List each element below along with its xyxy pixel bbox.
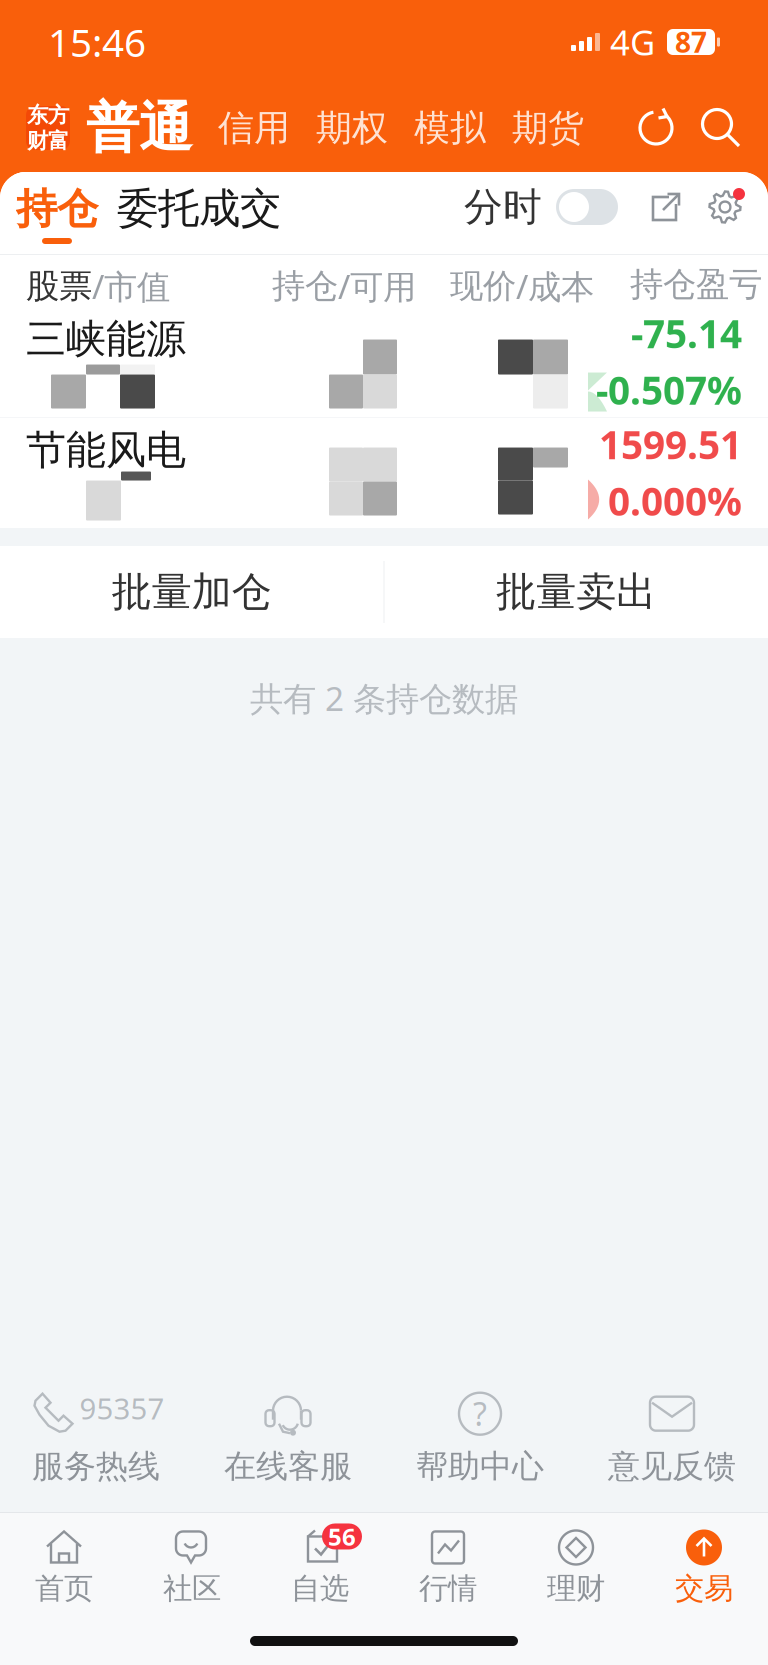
staticText: 理财: [547, 1570, 605, 1606]
staticText: 15:46: [48, 16, 146, 68]
staticText: 委托成交: [117, 183, 281, 234]
staticText: -75.14: [631, 307, 742, 359]
button[interactable]: 三峡能源: [0, 307, 768, 417]
staticText: 意见反馈: [608, 1447, 736, 1486]
button[interactable]: 设置: [708, 190, 742, 224]
staticText: 自选: [291, 1570, 349, 1606]
button[interactable]: 刷新: [636, 107, 678, 149]
button[interactable]: ?: [384, 1387, 576, 1486]
staticText: ?: [473, 1392, 487, 1435]
button[interactable]: 95357: [0, 1387, 192, 1486]
staticText: /市值: [92, 264, 170, 308]
button[interactable]: 委托成交: [114, 172, 284, 254]
button[interactable]: 节能风电: [0, 418, 768, 528]
staticText: 批量加仓: [112, 567, 272, 616]
staticText: /成本: [516, 264, 594, 308]
staticText: 1599.51: [599, 418, 742, 470]
staticText: 首页: [35, 1570, 93, 1606]
button[interactable]: 搜索: [700, 107, 742, 149]
staticText: 分时: [464, 183, 542, 231]
staticText: 帮助中心: [416, 1447, 544, 1486]
staticText: 持仓: [16, 183, 98, 235]
staticText: 股票: [26, 266, 92, 307]
staticText: 服务热线: [32, 1447, 160, 1486]
button[interactable]: 交易: [640, 1517, 768, 1612]
button[interactable]: 首页: [0, 1517, 128, 1612]
staticText: 交易: [675, 1570, 733, 1606]
staticText: 普通: [86, 94, 192, 162]
staticText: 现价: [450, 266, 516, 307]
staticText: 东方: [27, 102, 69, 128]
staticText: 期货: [512, 106, 584, 150]
staticText: 56: [328, 1520, 356, 1553]
staticText: 87: [675, 23, 707, 61]
button[interactable]: 社区: [128, 1517, 256, 1612]
button[interactable]: 意见反馈: [576, 1387, 768, 1486]
staticText: 0.000%: [608, 474, 742, 527]
staticText: -0.507%: [596, 363, 742, 416]
staticText: 在线客服: [224, 1447, 352, 1486]
button[interactable]: 理财: [512, 1517, 640, 1612]
staticText: 节能风电: [26, 425, 186, 475]
staticText: 社区: [163, 1570, 221, 1606]
staticText: /可用: [338, 264, 416, 308]
button[interactable]: 持仓: [14, 172, 100, 254]
button[interactable]: 批量加仓: [0, 546, 383, 638]
button[interactable]: 在线客服: [192, 1387, 384, 1486]
button[interactable]: 批量卖出: [384, 546, 768, 638]
staticText: 三峡能源: [26, 314, 186, 364]
staticText: 持仓: [272, 266, 338, 307]
button[interactable]: 分享: [648, 190, 682, 224]
staticText: 95357: [79, 1389, 164, 1428]
staticText: 期权: [316, 106, 388, 150]
staticText: 信用: [218, 106, 290, 150]
staticText: 共有 2 条持仓数据: [250, 676, 518, 720]
button[interactable]: 行情: [384, 1517, 512, 1612]
button[interactable]: 56: [256, 1517, 384, 1612]
staticText: 行情: [419, 1570, 477, 1606]
staticText: 批量卖出: [496, 567, 656, 616]
staticText: 模拟: [414, 106, 486, 150]
staticText: 4G: [610, 19, 655, 65]
staticText: 持仓盈亏: [630, 264, 762, 305]
staticText: 财富: [27, 127, 69, 154]
